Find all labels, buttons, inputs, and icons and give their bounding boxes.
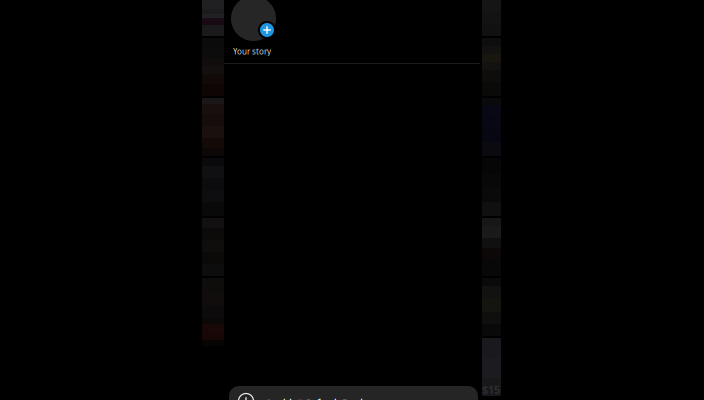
button[interactable]: Your story bbox=[224, 0, 284, 58]
staticText: Your story bbox=[233, 46, 271, 57]
staticText: $15 bbox=[482, 382, 500, 397]
staticText: Couldn't Refresh Feed bbox=[265, 396, 363, 400]
button[interactable]: Couldn't Refresh Feed bbox=[229, 386, 478, 400]
